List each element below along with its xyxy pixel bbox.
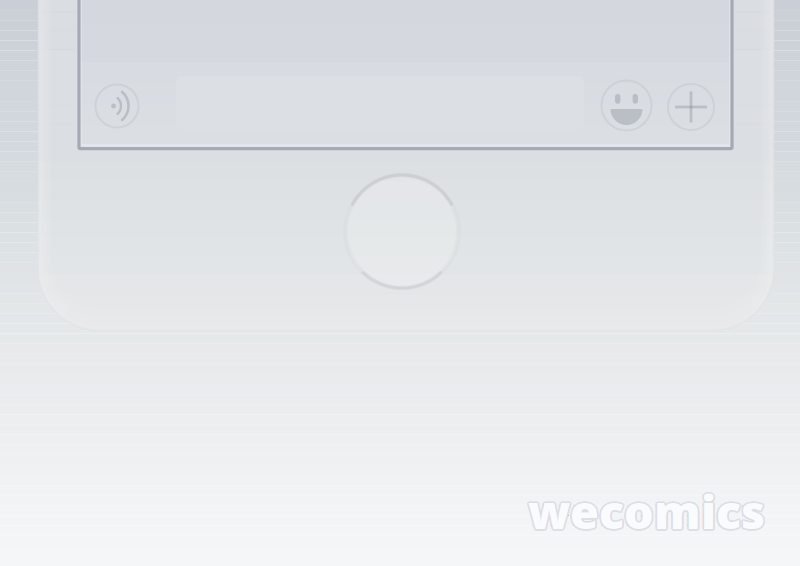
staticText: wecomics [527, 481, 764, 543]
staticText: wecomics [529, 481, 766, 543]
staticText: wecomics [528, 478, 765, 540]
staticText: wecomics [528, 481, 765, 543]
staticText: wecomics [529, 480, 766, 542]
staticText: wecomics [529, 481, 766, 543]
button[interactable]: Add attachment [663, 79, 719, 135]
staticText: wecomics [527, 481, 764, 543]
staticText: wecomics [529, 479, 766, 541]
staticText: wecomics [527, 479, 764, 541]
staticText: wecomics [527, 479, 764, 541]
button[interactable]: Emoji [597, 76, 655, 134]
staticText: wecomics [529, 479, 766, 541]
button[interactable]: Record voice message [90, 78, 144, 134]
staticText: wecomics [527, 479, 764, 541]
staticText: wecomics [529, 479, 766, 541]
staticText: wecomics [527, 481, 764, 543]
staticText: wecomics [526, 480, 763, 542]
staticText: wecomics [529, 481, 766, 543]
staticText: wecomics [528, 480, 765, 542]
